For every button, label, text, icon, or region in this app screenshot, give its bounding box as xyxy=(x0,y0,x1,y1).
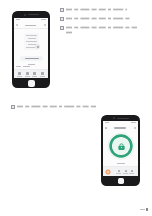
button[interactable] xyxy=(60,8,148,12)
button[interactable]: Phone screenshot xyxy=(12,11,50,88)
button[interactable] xyxy=(11,105,103,109)
button[interactable]: Nav 2 xyxy=(123,170,128,174)
button[interactable]: Phone screenshot xyxy=(101,115,140,186)
button[interactable]: Locked xyxy=(108,133,134,159)
button[interactable]: Menu xyxy=(105,127,107,129)
button[interactable]: Tab 4 xyxy=(40,72,45,77)
button[interactable]: Nav 1 xyxy=(116,170,121,174)
button[interactable] xyxy=(20,56,43,61)
button[interactable] xyxy=(60,26,148,34)
button[interactable]: Tab 1 xyxy=(17,72,22,77)
button[interactable]: Tab 2 xyxy=(25,72,30,77)
button[interactable]: Tab 3 xyxy=(32,72,37,77)
button[interactable]: Add xyxy=(105,169,111,175)
button[interactable] xyxy=(60,17,148,21)
button[interactable]: Nav 3 xyxy=(129,170,134,174)
